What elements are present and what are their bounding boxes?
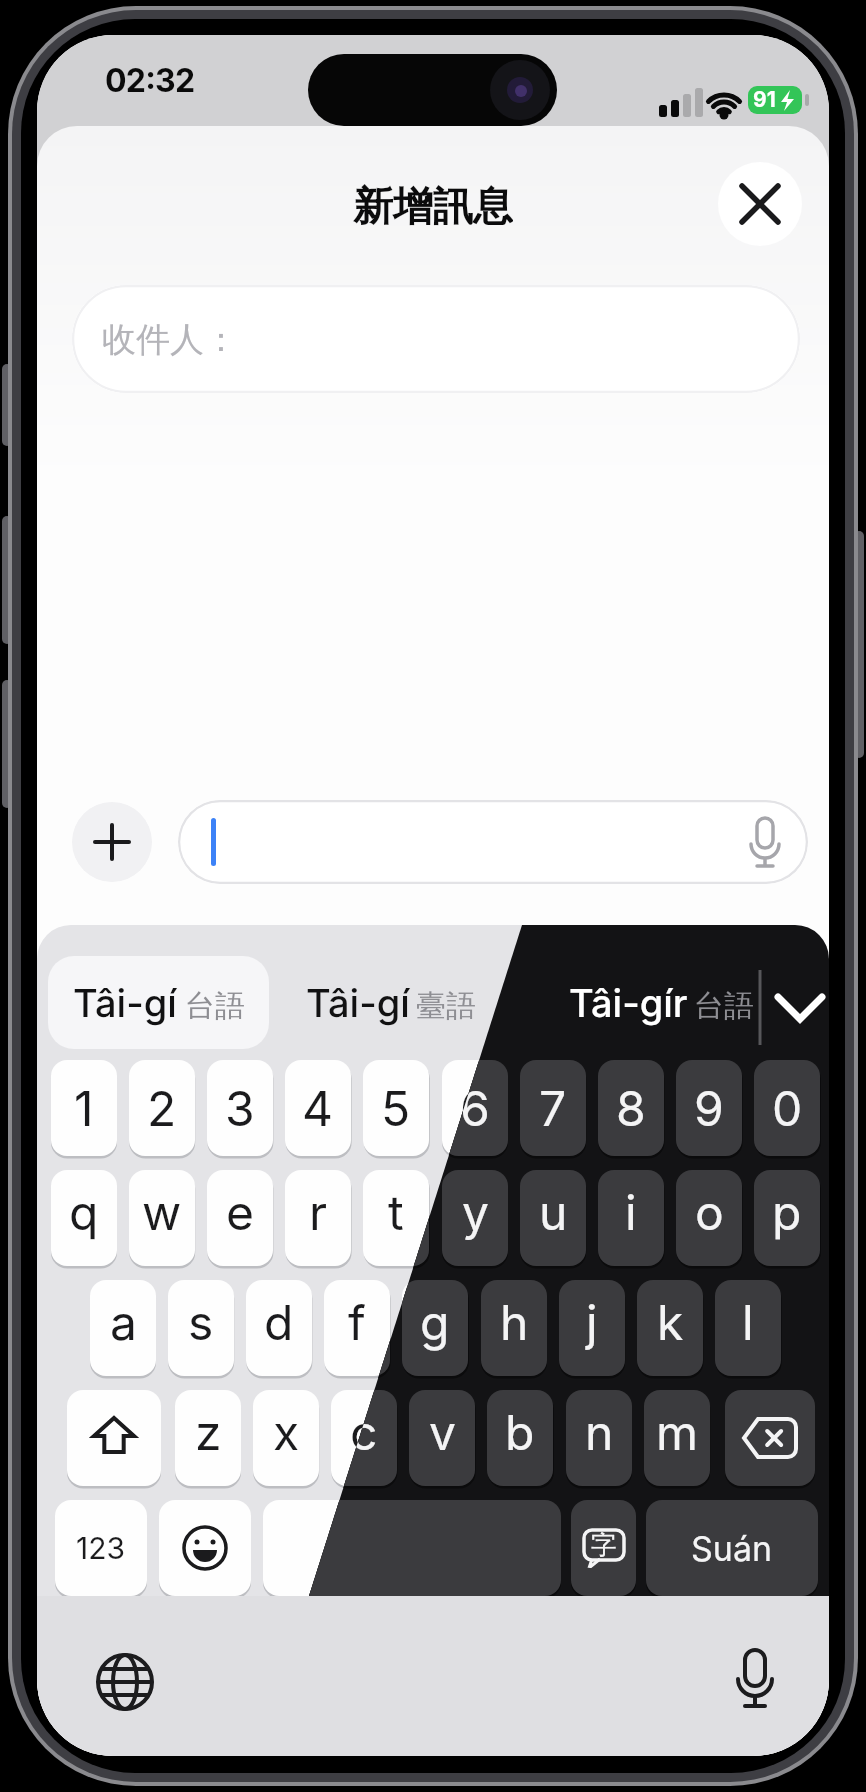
button[interactable] <box>72 802 152 882</box>
button[interactable]: 7 <box>520 1060 586 1156</box>
button[interactable]: q <box>51 1170 117 1266</box>
button[interactable]: 0 <box>754 1060 820 1156</box>
button[interactable]: e <box>207 1170 273 1266</box>
button[interactable]: p <box>754 1170 820 1266</box>
button[interactable]: Tâi-gí <box>306 973 476 1033</box>
staticText: v <box>429 1403 456 1461</box>
button[interactable] <box>67 1390 161 1486</box>
button[interactable]: 4 <box>285 1060 351 1156</box>
button[interactable]: h <box>481 1280 547 1376</box>
button[interactable]: h <box>481 1280 547 1376</box>
button[interactable]: 0 <box>754 1060 820 1156</box>
button[interactable]: g <box>402 1280 468 1376</box>
button[interactable]: p <box>754 1170 820 1266</box>
staticText: 字 <box>591 1529 617 1562</box>
button[interactable]: m <box>644 1390 710 1486</box>
button[interactable]: o <box>676 1170 742 1266</box>
button[interactable]: 5 <box>363 1060 429 1156</box>
button[interactable] <box>725 1390 815 1486</box>
button[interactable]: 2 <box>129 1060 195 1156</box>
button[interactable]: t <box>363 1170 429 1266</box>
button[interactable]: v <box>409 1390 475 1486</box>
button[interactable] <box>48 956 269 1049</box>
button[interactable]: s <box>168 1280 234 1376</box>
button[interactable]: w <box>129 1170 195 1266</box>
button[interactable]: c <box>331 1390 397 1486</box>
button[interactable]: m <box>644 1390 710 1486</box>
button[interactable]: z <box>175 1390 241 1486</box>
button[interactable]: b <box>487 1390 553 1486</box>
button[interactable]: Suán <box>646 1500 818 1596</box>
button[interactable]: n <box>566 1390 632 1486</box>
button[interactable]: a <box>90 1280 156 1376</box>
button[interactable] <box>67 1390 161 1486</box>
button[interactable] <box>178 800 808 884</box>
button[interactable]: k <box>637 1280 703 1376</box>
button[interactable]: x <box>253 1390 319 1486</box>
button[interactable]: j <box>559 1280 625 1376</box>
button[interactable] <box>718 162 802 246</box>
button[interactable]: l <box>715 1280 781 1376</box>
button[interactable]: 7 <box>520 1060 586 1156</box>
button[interactable]: 3 <box>207 1060 273 1156</box>
button[interactable]: 123 <box>55 1500 147 1596</box>
button[interactable]: r <box>285 1170 351 1266</box>
button[interactable]: 2 <box>129 1060 195 1156</box>
button[interactable] <box>159 1500 251 1596</box>
button[interactable]: l <box>715 1280 781 1376</box>
button[interactable]: f <box>324 1280 390 1376</box>
button[interactable]: z <box>175 1390 241 1486</box>
button[interactable]: u <box>520 1170 586 1266</box>
button[interactable]: o <box>676 1170 742 1266</box>
button[interactable] <box>48 956 269 1049</box>
button[interactable]: w <box>129 1170 195 1266</box>
button[interactable]: 收件人： <box>72 285 800 393</box>
button[interactable] <box>263 1500 561 1596</box>
button[interactable]: 4 <box>285 1060 351 1156</box>
button[interactable]: 9 <box>676 1060 742 1156</box>
button[interactable]: 6 <box>442 1060 508 1156</box>
button[interactable] <box>159 1500 251 1596</box>
button[interactable]: f <box>324 1280 390 1376</box>
button[interactable] <box>263 1500 561 1596</box>
button[interactable]: j <box>559 1280 625 1376</box>
button[interactable] <box>725 1390 815 1486</box>
button[interactable]: i <box>598 1170 664 1266</box>
button[interactable]: y <box>442 1170 508 1266</box>
button[interactable]: g <box>402 1280 468 1376</box>
button[interactable]: n <box>566 1390 632 1486</box>
button[interactable]: q <box>51 1170 117 1266</box>
button[interactable]: k <box>637 1280 703 1376</box>
button[interactable]: d <box>246 1280 312 1376</box>
button[interactable]: t <box>363 1170 429 1266</box>
button[interactable]: e <box>207 1170 273 1266</box>
button[interactable]: 8 <box>598 1060 664 1156</box>
button[interactable] <box>719 1646 791 1718</box>
button[interactable]: i <box>598 1170 664 1266</box>
button[interactable] <box>89 1646 161 1718</box>
button[interactable]: Tâi-gír <box>569 973 754 1033</box>
button[interactable]: v <box>409 1390 475 1486</box>
button[interactable]: c <box>331 1390 397 1486</box>
button[interactable]: 123 <box>55 1500 147 1596</box>
button[interactable]: Tâi-gí <box>306 973 476 1033</box>
button[interactable]: 1 <box>51 1060 117 1156</box>
button[interactable]: r <box>285 1170 351 1266</box>
button[interactable]: y <box>442 1170 508 1266</box>
button[interactable]: 8 <box>598 1060 664 1156</box>
button[interactable]: 5 <box>363 1060 429 1156</box>
button[interactable]: u <box>520 1170 586 1266</box>
button[interactable]: 字 <box>571 1500 636 1596</box>
button[interactable]: d <box>246 1280 312 1376</box>
button[interactable]: Tâi-gír <box>569 973 754 1033</box>
button[interactable]: 字 <box>571 1500 636 1596</box>
button[interactable]: a <box>90 1280 156 1376</box>
button[interactable]: 3 <box>207 1060 273 1156</box>
button[interactable]: x <box>253 1390 319 1486</box>
button[interactable]: b <box>487 1390 553 1486</box>
button[interactable]: 6 <box>442 1060 508 1156</box>
button[interactable]: s <box>168 1280 234 1376</box>
button[interactable]: 1 <box>51 1060 117 1156</box>
button[interactable]: 9 <box>676 1060 742 1156</box>
button[interactable]: Suán <box>646 1500 818 1596</box>
